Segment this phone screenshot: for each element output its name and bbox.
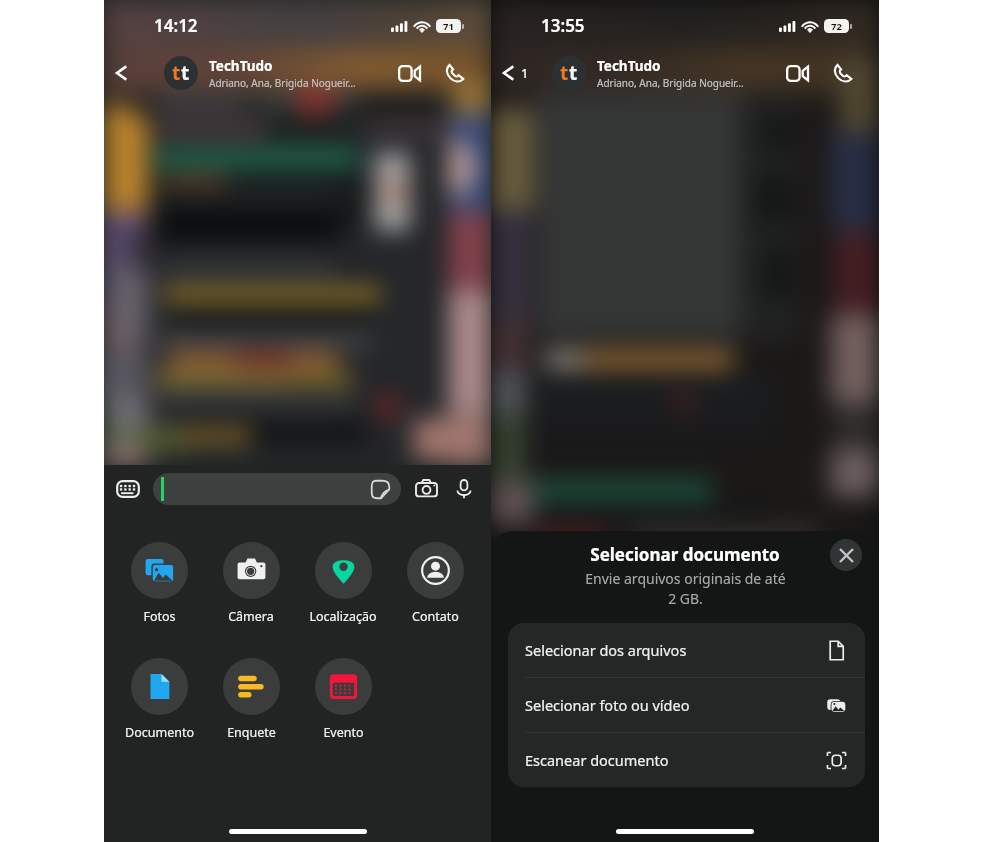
button[interactable]: Profile picture [552,56,586,90]
staticText: Envie arquivos originais de até 2 GB. [585,569,786,608]
button[interactable]: Stickers [153,473,401,505]
button[interactable]: Voice call [826,57,858,89]
staticText: 71 [443,20,454,33]
button[interactable]: Enquete [205,656,297,743]
staticText: t [181,60,190,86]
button[interactable]: TechTudo [597,57,781,90]
button[interactable]: Documento [114,656,205,743]
staticText: Enquete [227,724,276,741]
staticText: t [172,60,181,86]
staticText: Selecionar foto ou vídeo [525,695,826,715]
button[interactable]: Keyboard [116,480,140,498]
staticText: Câmera [228,608,274,625]
staticText: TechTudo [209,57,273,75]
staticText: 72 [831,20,842,33]
button[interactable]: Voice message [454,479,474,499]
staticText: Evento [323,724,364,741]
staticText: Localização [309,608,377,625]
staticText: 1 [521,64,529,82]
button[interactable]: Evento [297,656,389,743]
button[interactable]: Selecionar dos arquivos [508,623,865,677]
button[interactable]: Voice call [438,57,470,89]
staticText: Fotos [143,608,176,625]
button[interactable]: TechTudo [209,57,393,90]
staticText: Selecionar dos arquivos [525,640,826,660]
button[interactable]: Video call [781,57,813,89]
button[interactable]: Profile picture [164,56,198,90]
staticText: Adriano, Ana, Brigida Nogueir… [597,76,744,90]
staticText: t [569,60,578,86]
button[interactable]: Stickers [371,480,390,499]
button[interactable]: Back [110,58,134,88]
staticText: TechTudo [597,57,661,75]
staticText: Contato [412,608,459,625]
staticText: Escanear documento [525,750,826,770]
button[interactable]: Selecionar foto ou vídeo [508,678,865,732]
button[interactable]: Localização [297,540,389,627]
staticText: 13:55 [541,14,585,37]
button[interactable]: Close [830,539,862,571]
button[interactable]: Video call [393,57,425,89]
staticText: t [560,60,569,86]
staticText: 14:12 [154,14,198,37]
button[interactable]: Camera [415,478,438,501]
staticText: Documento [125,724,194,741]
button[interactable]: Contato [389,540,481,627]
button[interactable]: Fotos [114,540,205,627]
button[interactable]: Câmera [205,540,297,627]
staticText: Adriano, Ana, Brigida Nogueir… [209,76,356,90]
staticText: Selecionar documento [590,543,780,566]
button[interactable]: Back [497,58,532,88]
button[interactable]: Escanear documento [508,733,865,787]
